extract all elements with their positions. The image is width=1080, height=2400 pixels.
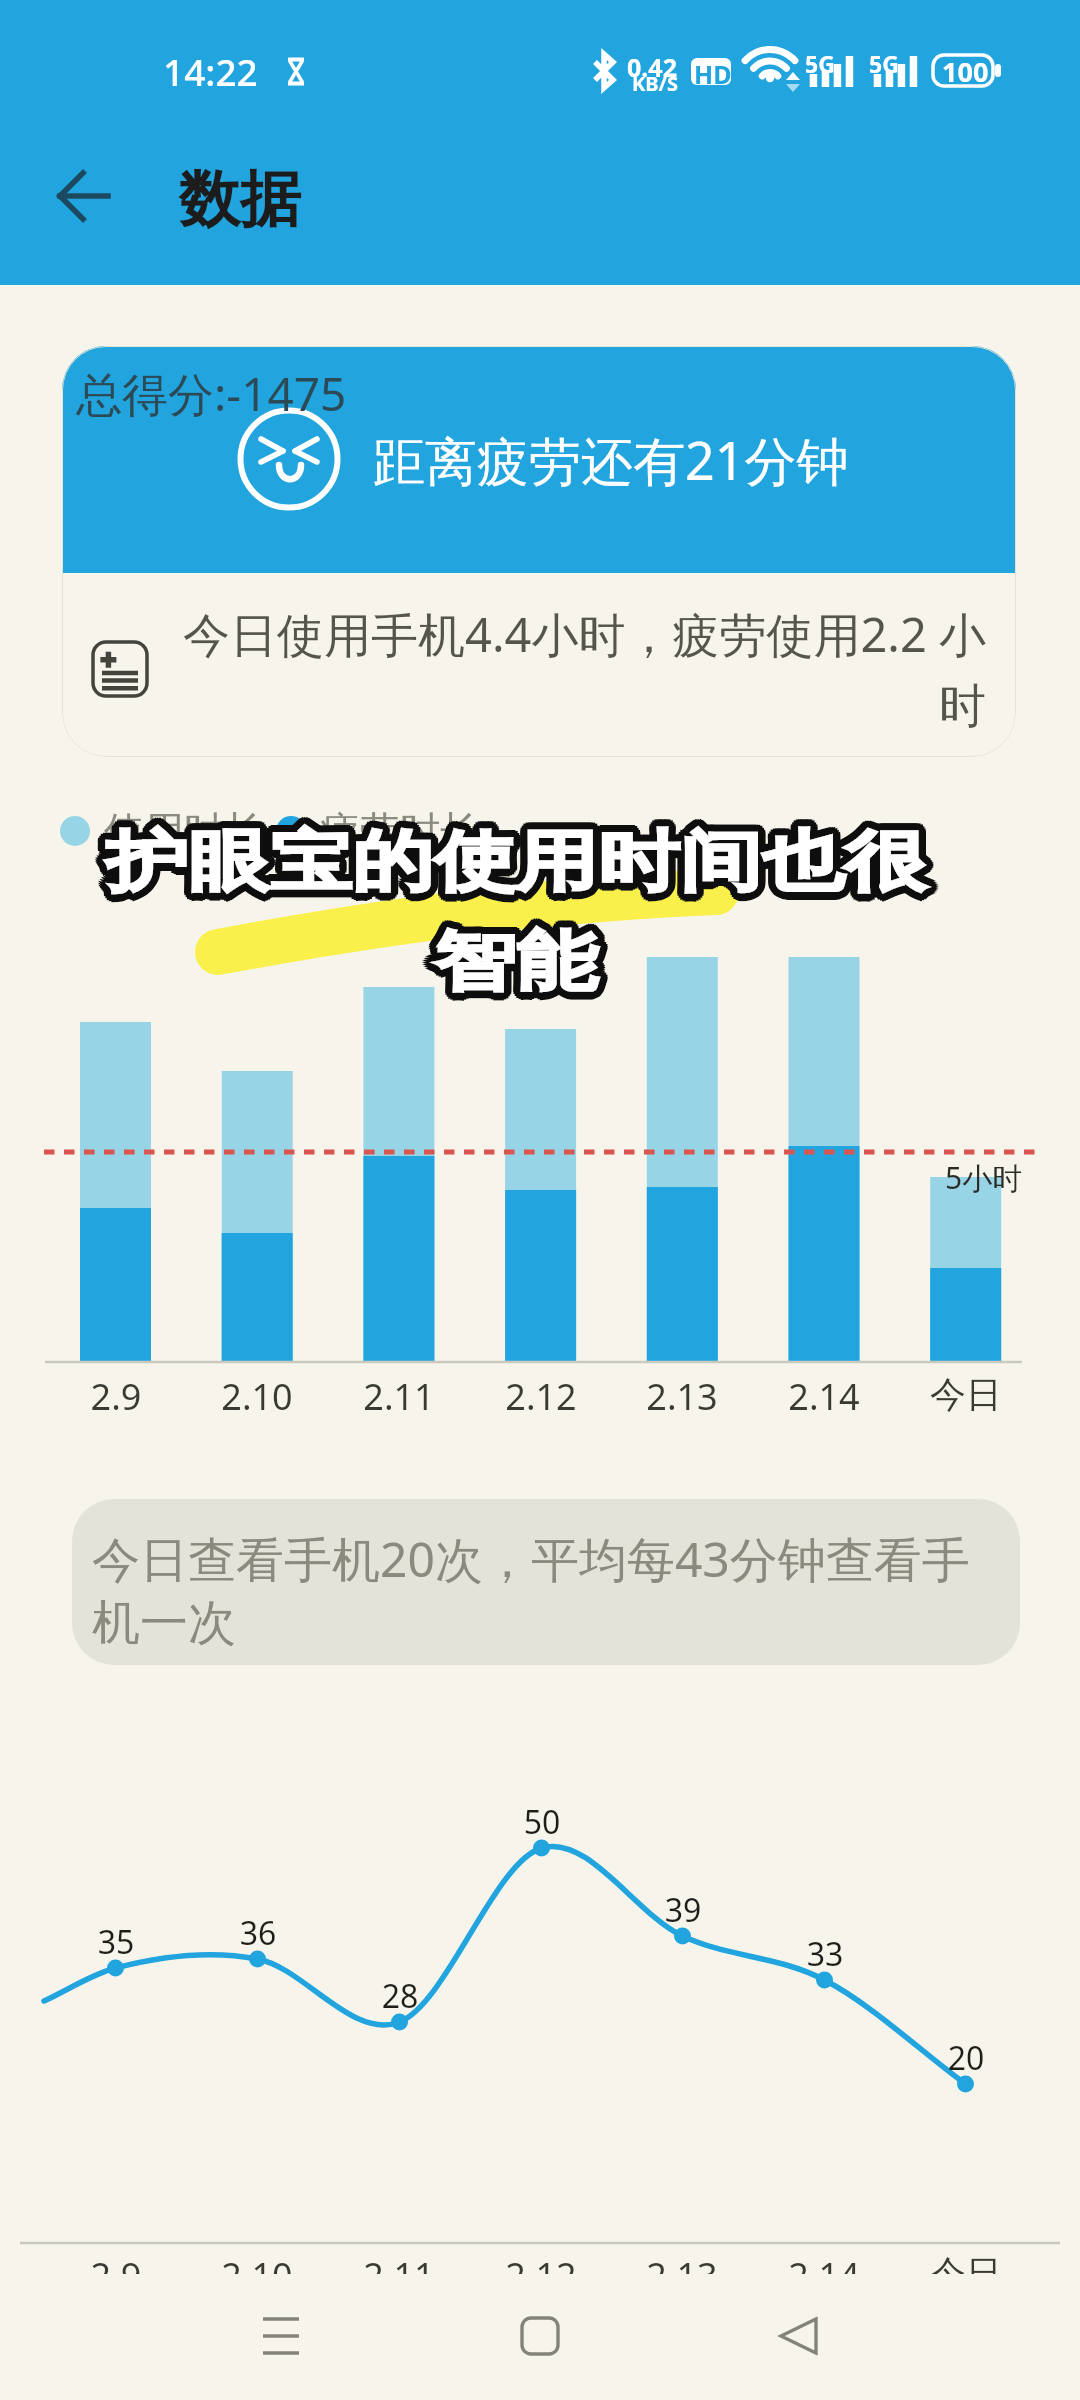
staticText: 2.12 xyxy=(481,1372,601,1421)
staticText: 2.9 xyxy=(56,1372,176,1421)
staticText: 0.42 xyxy=(627,50,677,84)
button[interactable]: Home xyxy=(460,2296,620,2376)
staticText: 35 xyxy=(56,1920,176,1964)
staticText: 今日 xyxy=(906,2251,1026,2296)
button[interactable]: 距离疲劳还有21分钟 xyxy=(62,346,1016,757)
staticText: 今日使用手机4.4小时，疲劳使用2.2 小时 xyxy=(176,602,986,735)
staticText: 33 xyxy=(765,1932,885,1976)
staticText: 5G xyxy=(869,48,899,79)
staticText: 2.10 xyxy=(197,1372,317,1421)
staticText: 5小时 xyxy=(945,1157,1023,1198)
staticText: 20 xyxy=(906,2036,1026,2080)
staticText: 数据 xyxy=(179,161,301,238)
staticText: 2.14 xyxy=(764,1372,884,1421)
staticText: 36 xyxy=(198,1911,318,1955)
staticText: 2.13 xyxy=(622,2251,742,2300)
staticText: 100 xyxy=(942,53,989,90)
staticText: 总得分:-1475 xyxy=(76,362,347,425)
button[interactable]: Back xyxy=(719,2296,879,2376)
staticText: HD xyxy=(694,57,732,91)
staticText: 2.14 xyxy=(764,2251,884,2300)
staticText: 今日查看手机20次，平均每43分钟查看手机一次 xyxy=(92,1526,1010,1654)
staticText: 14:22 xyxy=(163,46,258,96)
staticText: 2.10 xyxy=(197,2251,317,2300)
staticText: 2.12 xyxy=(481,2251,601,2300)
staticText: 2.9 xyxy=(56,2251,176,2300)
staticText: 距离疲劳还有21分钟 xyxy=(373,424,849,495)
staticText: 28 xyxy=(340,1974,460,2018)
staticText: 疲劳时长 xyxy=(320,806,480,856)
staticText: 5G xyxy=(805,48,835,79)
staticText: 39 xyxy=(623,1888,743,1932)
staticText: 使用时长 xyxy=(104,806,264,856)
staticText: 今日 xyxy=(906,1372,1026,1417)
staticText: 2.13 xyxy=(622,1372,742,1421)
button[interactable]: 今日查看手机20次，平均每43分钟查看手机一次 xyxy=(72,1499,1020,1665)
staticText: 2.11 xyxy=(339,2251,459,2300)
button[interactable]: Back xyxy=(36,148,132,244)
staticText: 2.11 xyxy=(339,1372,459,1421)
staticText: KB/S xyxy=(632,70,678,97)
staticText: 50 xyxy=(482,1800,602,1844)
button[interactable]: Recent apps xyxy=(201,2296,361,2376)
